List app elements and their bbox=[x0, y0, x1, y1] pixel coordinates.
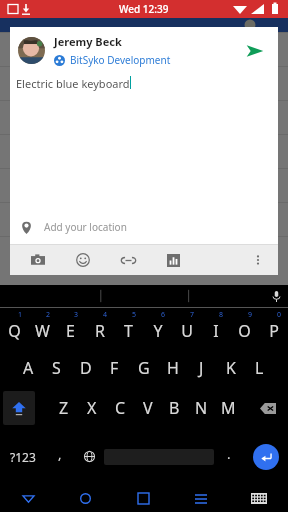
staticText: P bbox=[269, 320, 279, 342]
button[interactable]: More options bbox=[244, 246, 272, 274]
staticText: G bbox=[138, 357, 150, 379]
button[interactable]: H bbox=[158, 348, 187, 388]
staticText: N bbox=[195, 397, 208, 419]
button[interactable]: G bbox=[129, 348, 158, 388]
staticText: S bbox=[52, 357, 61, 379]
button[interactable]: Voice input bbox=[264, 285, 288, 307]
staticText: D bbox=[80, 357, 92, 379]
staticText: A bbox=[23, 357, 34, 379]
button[interactable]: L bbox=[245, 348, 274, 388]
staticText: H bbox=[167, 357, 179, 379]
staticText: 0 bbox=[277, 310, 282, 320]
button[interactable]: R bbox=[85, 308, 114, 348]
staticText: R bbox=[95, 320, 105, 342]
button[interactable]: T bbox=[114, 308, 143, 348]
staticText: 4 bbox=[103, 310, 108, 320]
staticText: , bbox=[58, 445, 62, 463]
button[interactable]: Menu bbox=[172, 485, 230, 512]
button[interactable]: Link bbox=[116, 248, 140, 272]
button[interactable]: Emoji bbox=[71, 248, 95, 272]
button[interactable]: Y bbox=[143, 308, 172, 348]
button[interactable]: N bbox=[188, 388, 215, 428]
staticText: Electric blue keyboard bbox=[16, 76, 130, 91]
button[interactable]: ?123 bbox=[0, 428, 46, 485]
button[interactable]: K bbox=[216, 348, 245, 388]
staticText: 9 bbox=[248, 310, 253, 320]
button[interactable]: Poll bbox=[161, 248, 185, 272]
button[interactable]: , bbox=[46, 428, 74, 485]
staticText: Wed 12:39 bbox=[119, 2, 169, 16]
staticText: 5 bbox=[132, 310, 137, 320]
staticText: C bbox=[115, 397, 126, 419]
button[interactable]: U bbox=[172, 308, 201, 348]
staticText: U bbox=[181, 320, 193, 342]
button[interactable]: E bbox=[56, 308, 85, 348]
staticText: 2 bbox=[46, 310, 51, 320]
staticText: X bbox=[87, 397, 97, 419]
staticText: Y bbox=[153, 320, 163, 342]
button[interactable]: P bbox=[259, 308, 288, 348]
staticText: 7 bbox=[190, 310, 195, 320]
button[interactable]: X bbox=[78, 388, 106, 428]
staticText: 1 bbox=[18, 310, 23, 320]
staticText: . bbox=[227, 445, 231, 463]
button[interactable]: Change language bbox=[74, 428, 104, 485]
button[interactable]: B bbox=[161, 388, 188, 428]
staticText: Jeremy Beck bbox=[54, 34, 122, 49]
staticText: 8 bbox=[219, 310, 224, 320]
button[interactable]: Z bbox=[50, 388, 78, 428]
button[interactable]: Shift bbox=[3, 391, 35, 425]
staticText: V bbox=[143, 397, 153, 419]
button[interactable]: Send bbox=[240, 36, 270, 66]
staticText: F bbox=[110, 357, 119, 379]
button[interactable]: I bbox=[201, 308, 230, 348]
button[interactable]: Camera bbox=[26, 248, 50, 272]
staticText: W bbox=[35, 320, 50, 342]
staticText: Q bbox=[8, 320, 21, 342]
button[interactable]: Enter bbox=[253, 444, 279, 470]
button[interactable]: A bbox=[14, 348, 42, 388]
button[interactable]: S bbox=[42, 348, 71, 388]
button[interactable]: Add your location bbox=[10, 210, 278, 244]
staticText: J bbox=[199, 357, 204, 379]
staticText: Add your location bbox=[44, 220, 127, 234]
staticText: Z bbox=[59, 397, 69, 419]
button[interactable]: Backspace bbox=[248, 388, 288, 428]
staticText: 6 bbox=[161, 310, 166, 320]
button[interactable]: W bbox=[28, 308, 56, 348]
staticText: BitSyko Development bbox=[70, 53, 171, 67]
button[interactable]: C bbox=[106, 388, 134, 428]
staticText: L bbox=[255, 357, 264, 379]
button[interactable]: Recents bbox=[114, 485, 172, 512]
button[interactable]: V bbox=[134, 388, 161, 428]
staticText: I bbox=[213, 320, 219, 342]
staticText: O bbox=[238, 320, 251, 342]
staticText: ?123 bbox=[10, 449, 36, 465]
button[interactable]: Q bbox=[0, 308, 28, 348]
staticText: 3 bbox=[74, 310, 79, 320]
button[interactable]: F bbox=[100, 348, 129, 388]
button[interactable]: D bbox=[71, 348, 100, 388]
staticText: K bbox=[226, 357, 236, 379]
button[interactable]: . bbox=[214, 428, 244, 485]
button[interactable]: J bbox=[187, 348, 216, 388]
button[interactable]: Back bbox=[0, 485, 57, 512]
button[interactable]: Home bbox=[57, 485, 114, 512]
staticText: B bbox=[169, 397, 180, 419]
button[interactable]: M bbox=[215, 388, 242, 428]
button[interactable]: O bbox=[230, 308, 259, 348]
staticText: T bbox=[124, 320, 133, 342]
staticText: E bbox=[66, 320, 75, 342]
staticText: M bbox=[221, 397, 236, 419]
button[interactable]: Keyboard bbox=[230, 485, 288, 512]
